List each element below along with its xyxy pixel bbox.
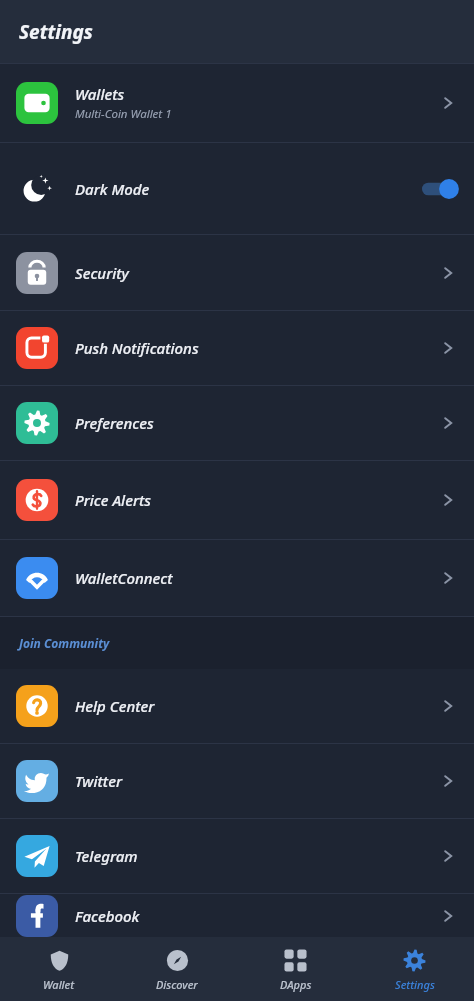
button[interactable]: Discover [118,937,236,1001]
button[interactable]: Help Center [0,669,474,743]
button[interactable]: Preferences [0,386,474,460]
button[interactable]: DApps [236,937,355,1001]
staticText: Help Center [75,696,155,716]
staticText: Wallets [75,84,125,104]
staticText: Settings [395,977,435,992]
staticText: Preferences [75,413,154,433]
button[interactable]: Wallets [0,64,474,142]
staticText: Dark Mode [75,179,422,199]
button[interactable]: Push Notifications [0,311,474,385]
staticText: Settings [19,19,93,45]
button[interactable]: Facebook [0,894,474,937]
staticText: Telegram [75,846,138,866]
button[interactable]: Dark Mode toggle [422,180,458,198]
staticText: Push Notifications [75,338,199,358]
button[interactable]: Security [0,235,474,310]
staticText: Price Alerts [75,490,151,510]
button[interactable]: Settings [355,937,474,1001]
button[interactable]: Price Alerts [0,461,474,539]
staticText: Discover [156,977,198,992]
staticText: Twitter [75,771,122,791]
staticText: WalletConnect [75,568,173,588]
button[interactable]: Wallet [0,937,118,1001]
staticText: Security [75,263,129,283]
staticText: DApps [280,977,312,992]
staticText: Join Community [19,635,110,651]
staticText: Facebook [75,906,140,926]
staticText: Wallet [43,977,75,992]
button[interactable]: WalletConnect [0,540,474,616]
button[interactable]: Telegram [0,819,474,893]
button[interactable]: Dark Mode [0,143,474,234]
button[interactable]: Twitter [0,744,474,818]
staticText: Multi-Coin Wallet 1 [75,106,172,122]
